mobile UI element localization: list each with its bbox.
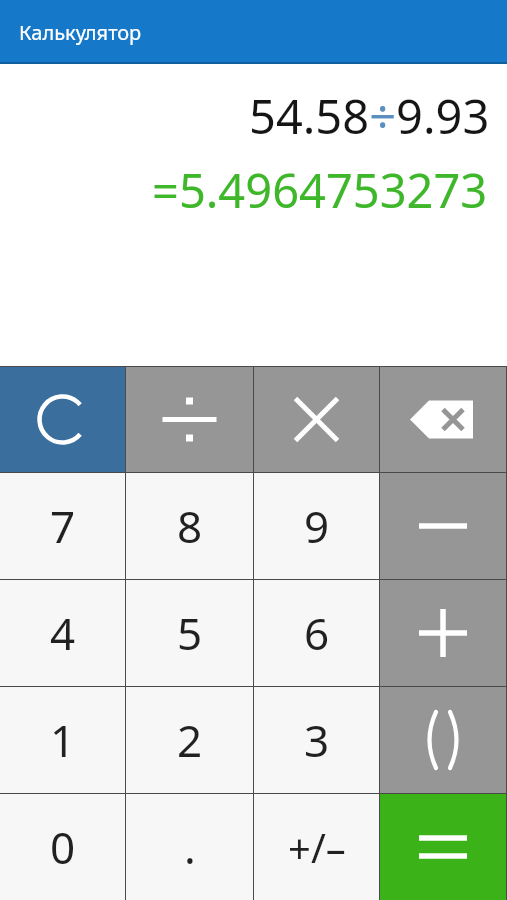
staticText: 2	[177, 710, 203, 770]
button[interactable]: Minus	[380, 473, 506, 579]
button[interactable]: 9	[254, 473, 379, 579]
staticText: 4	[50, 603, 76, 663]
button[interactable]: Backspace	[380, 367, 506, 472]
staticText: Калькулятор	[19, 19, 142, 46]
button[interactable]: .	[126, 794, 253, 900]
staticText: =5.4964753273	[152, 158, 488, 222]
button[interactable]: 7	[0, 473, 125, 579]
button[interactable]: 6	[254, 580, 379, 686]
staticText: +/–	[288, 820, 346, 874]
button[interactable]: 5	[126, 580, 253, 686]
staticText: .	[184, 817, 196, 877]
button[interactable]: 8	[126, 473, 253, 579]
button[interactable]: 4	[0, 580, 125, 686]
staticText: 0	[50, 817, 76, 877]
staticText: 9	[304, 496, 330, 556]
button[interactable]: Equals	[380, 794, 506, 900]
button[interactable]: +/–	[254, 794, 379, 900]
button[interactable]: Parentheses	[380, 687, 506, 793]
staticText: 1	[50, 710, 76, 770]
button[interactable]: Plus	[380, 580, 506, 686]
button[interactable]: 3	[254, 687, 379, 793]
staticText: 6	[304, 603, 330, 663]
staticText: 5	[177, 603, 203, 663]
staticText: 54.58÷9.93	[249, 84, 490, 148]
button[interactable]: 1	[0, 687, 125, 793]
button[interactable]: 0	[0, 794, 125, 900]
button[interactable]: Multiply	[254, 367, 379, 472]
button[interactable]: Divide	[126, 367, 253, 472]
button[interactable]: 2	[126, 687, 253, 793]
staticText: 7	[50, 496, 76, 556]
staticText: 3	[304, 710, 330, 770]
button[interactable]: Clear	[0, 367, 125, 472]
staticText: 8	[177, 496, 203, 556]
